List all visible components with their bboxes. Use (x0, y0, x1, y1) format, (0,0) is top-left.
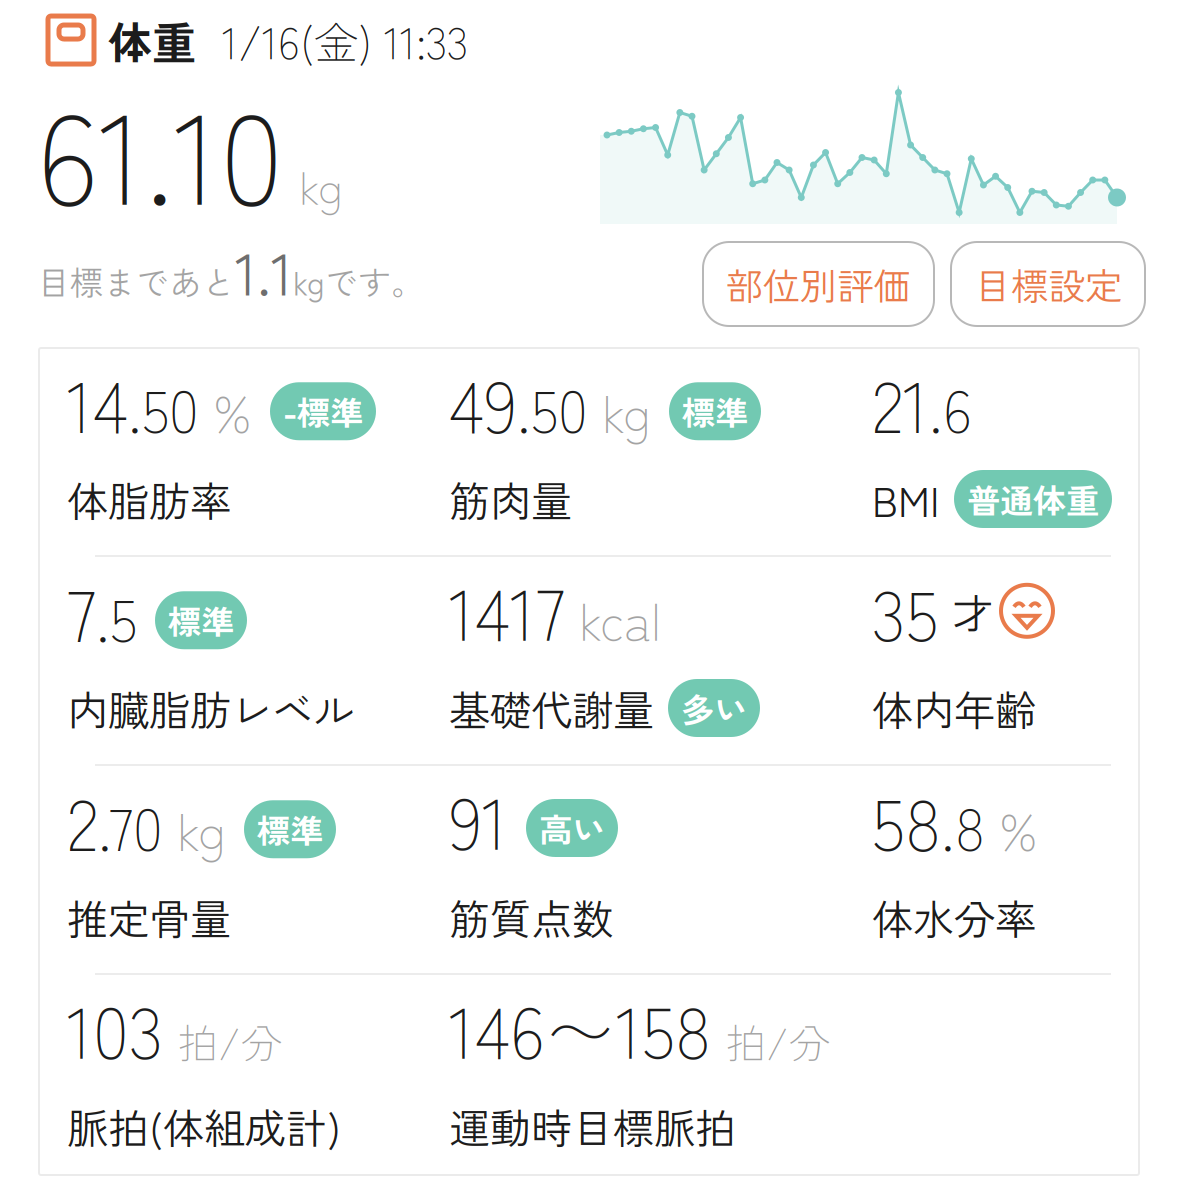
staticText: 49.50 (449, 352, 588, 452)
staticText: 91 (449, 768, 508, 870)
staticText: % (213, 374, 252, 448)
staticText: 21.6 (872, 352, 972, 452)
staticText: -標準 (283, 387, 363, 435)
staticText: kg (293, 258, 325, 305)
staticText: kg (602, 374, 651, 448)
staticText: 1.1 (235, 227, 293, 312)
staticText: 脈拍(体組成計) (67, 1096, 341, 1156)
staticText: 35 (872, 561, 938, 661)
staticText: 基礎代謝量 (449, 678, 654, 738)
staticText: 58.8 (872, 770, 985, 870)
staticText: 7.5 (67, 561, 137, 661)
staticText: 体重 (108, 8, 196, 72)
staticText: 1417 (449, 559, 565, 661)
staticText: % (999, 792, 1038, 866)
staticText: 拍/分 (177, 1011, 282, 1071)
staticText: kg (177, 792, 226, 866)
staticText: 103 (67, 977, 163, 1079)
staticText: 標準 (682, 387, 748, 435)
staticText: 146〜158 (449, 977, 711, 1079)
staticText: 部位別評価 (726, 257, 911, 311)
staticText: 普通体重 (967, 475, 1099, 523)
staticText: 筋肉量 (449, 469, 572, 529)
staticText: 筋質点数 (449, 887, 613, 947)
staticText: 体脂肪率 (67, 469, 231, 529)
staticText: kcal (579, 582, 661, 655)
staticText: です。 (325, 257, 424, 305)
staticText: 体水分率 (872, 887, 1036, 947)
staticText: 14.50 (67, 352, 199, 452)
staticText: 61.10 (37, 59, 283, 241)
staticText: 推定骨量 (67, 887, 231, 947)
button[interactable]: 部位別評価 (703, 242, 934, 326)
staticText: kg (299, 152, 343, 218)
staticText: 2.70 (67, 770, 163, 870)
staticText: 1/16(金) 11:33 (222, 8, 468, 72)
staticText: 高い (539, 804, 605, 852)
staticText: 標準 (257, 805, 323, 853)
staticText: 標準 (168, 596, 234, 644)
staticText: 才 (952, 581, 993, 641)
staticText: 多い (681, 684, 747, 732)
staticText: 運動時目標脈拍 (449, 1096, 736, 1156)
staticText: 内臓脂肪レベル (67, 678, 354, 738)
staticText: 目標まであと (37, 257, 235, 305)
button[interactable]: 目標設定 (951, 242, 1145, 326)
staticText: 拍/分 (725, 1011, 830, 1071)
staticText: 体内年齢 (872, 678, 1036, 738)
staticText: BMI (872, 469, 940, 529)
staticText: 目標設定 (974, 257, 1122, 311)
